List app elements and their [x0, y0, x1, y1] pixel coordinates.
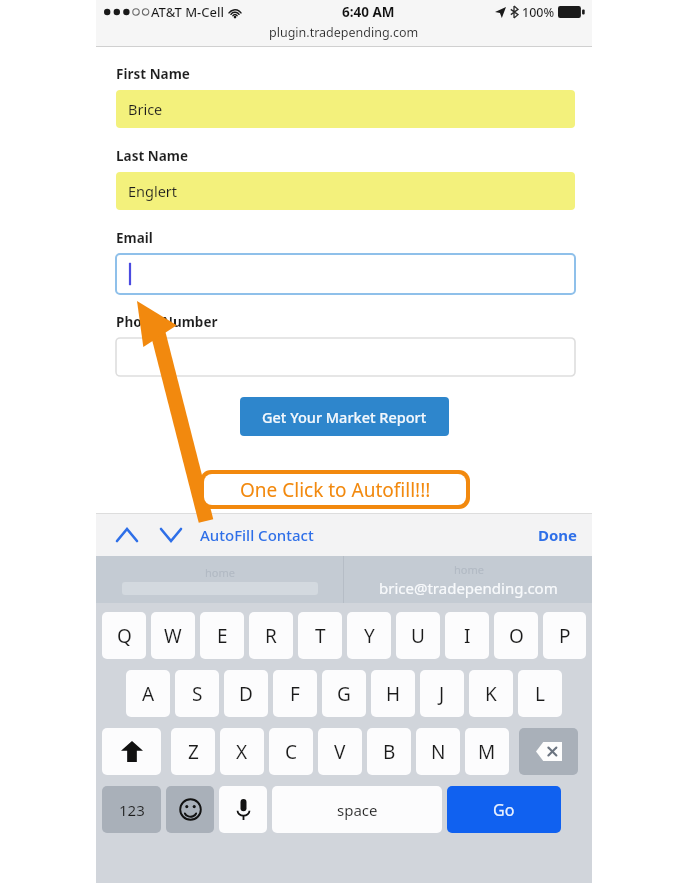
staticText: plugin.tradepending.com — [269, 24, 419, 41]
staticText: AutoFill Contact — [200, 525, 314, 545]
staticText: W — [164, 623, 182, 649]
staticText: Y — [364, 623, 375, 649]
staticText: AT&T M-Cell — [151, 3, 224, 21]
staticText: J — [439, 681, 445, 707]
button[interactable]: R — [249, 612, 293, 659]
button[interactable]: L — [518, 670, 562, 717]
button[interactable] — [116, 254, 575, 294]
staticText: home — [454, 562, 484, 577]
button[interactable] — [116, 338, 575, 376]
staticText: A — [142, 681, 155, 707]
button[interactable]: G — [322, 670, 366, 717]
staticText: M — [478, 739, 496, 765]
staticText: Brice — [128, 99, 163, 119]
button[interactable]: H — [371, 670, 415, 717]
button[interactable]: AutoFill Contact — [200, 525, 314, 545]
button[interactable]: D — [224, 670, 268, 717]
staticText: Done — [538, 525, 578, 545]
staticText: O — [509, 623, 524, 649]
button[interactable]: W — [151, 612, 195, 659]
staticText: Englert — [128, 181, 178, 201]
button[interactable]: V — [318, 728, 362, 775]
button[interactable]: P — [543, 612, 586, 659]
staticText: Phone Number — [116, 313, 218, 331]
button[interactable]: Brice — [116, 90, 575, 128]
button[interactable]: Englert — [116, 172, 575, 210]
staticText: 100% — [522, 4, 555, 21]
staticText: Email — [116, 229, 153, 247]
staticText: K — [485, 681, 497, 707]
button[interactable]: Dictation — [219, 786, 267, 833]
button[interactable]: home — [344, 556, 592, 603]
staticText: E — [217, 623, 228, 649]
staticText: Q — [117, 623, 132, 649]
button[interactable]: A — [126, 670, 170, 717]
staticText: N — [431, 739, 446, 765]
button[interactable]: X — [220, 728, 264, 775]
button[interactable]: Z — [171, 728, 215, 775]
button[interactable]: M — [465, 728, 509, 775]
button[interactable]: Get Your Market Report — [240, 397, 449, 436]
staticText: H — [386, 681, 401, 707]
button[interactable]: B — [367, 728, 411, 775]
staticText: brice@tradepending.com — [379, 578, 558, 598]
staticText: L — [535, 681, 545, 707]
staticText: P — [559, 623, 571, 649]
button[interactable]: 123 — [102, 786, 161, 833]
button[interactable]: J — [420, 670, 464, 717]
button[interactable]: One Click to Autofill!!! — [200, 470, 470, 509]
staticText: One Click to Autofill!!! — [240, 477, 431, 503]
button[interactable]: F — [273, 670, 317, 717]
staticText: I — [464, 623, 471, 649]
staticText: 6:40 AM — [342, 3, 395, 21]
button[interactable]: O — [494, 612, 538, 659]
staticText: F — [290, 681, 300, 707]
button[interactable]: space — [272, 786, 442, 833]
button[interactable]: K — [469, 670, 513, 717]
button[interactable]: home — [96, 556, 343, 603]
button[interactable]: T — [298, 612, 342, 659]
button[interactable]: Go — [447, 786, 561, 833]
staticText: V — [334, 739, 346, 765]
staticText: U — [411, 623, 425, 649]
staticText: X — [236, 739, 248, 765]
button[interactable]: Y — [347, 612, 391, 659]
staticText: Get Your Market Report — [262, 407, 427, 427]
button[interactable]: Previous field — [110, 518, 144, 552]
staticText: B — [383, 739, 396, 765]
staticText: First Name — [116, 65, 190, 83]
button[interactable]: C — [269, 728, 313, 775]
button[interactable]: I — [445, 612, 489, 659]
button[interactable]: Q — [102, 612, 146, 659]
button[interactable]: E — [200, 612, 244, 659]
staticText: C — [285, 739, 298, 765]
button[interactable]: Next field — [154, 518, 188, 552]
staticText: Z — [188, 739, 199, 765]
button[interactable]: N — [416, 728, 460, 775]
button[interactable]: Emoji keyboard — [166, 786, 214, 833]
button[interactable]: Shift — [102, 728, 161, 775]
staticText: S — [192, 681, 203, 707]
button[interactable]: Done — [538, 525, 578, 545]
staticText: T — [315, 623, 326, 649]
staticText: 123 — [119, 800, 145, 820]
staticText: D — [239, 681, 253, 707]
staticText: home — [205, 565, 235, 580]
staticText: G — [337, 681, 351, 707]
button[interactable]: Backspace — [519, 728, 578, 775]
staticText: space — [337, 800, 378, 820]
staticText: R — [265, 623, 277, 649]
button[interactable]: U — [396, 612, 440, 659]
staticText: Go — [493, 799, 515, 821]
button[interactable]: S — [175, 670, 219, 717]
staticText: Last Name — [116, 147, 189, 165]
